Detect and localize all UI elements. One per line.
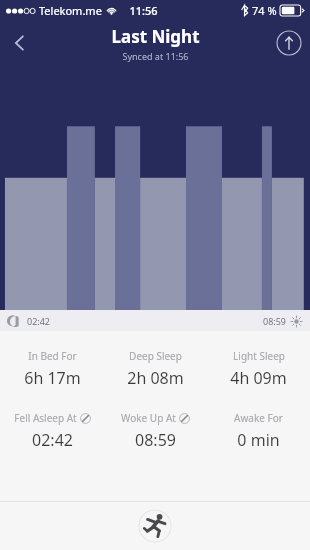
staticText: Telekom.me — [39, 3, 102, 18]
button[interactable]: Back — [0, 23, 40, 63]
staticText: 0 min — [237, 429, 280, 451]
staticText: Light Sleep — [233, 349, 285, 363]
staticText: 2h 08m — [127, 367, 184, 389]
button[interactable]: Activity — [138, 509, 172, 543]
staticText: 08:59 — [262, 315, 286, 327]
staticText: Woke Up At — [121, 411, 176, 425]
button[interactable]: Deep Sleep — [104, 347, 207, 391]
staticText: 02:42 — [32, 429, 73, 451]
staticText: Last Night — [111, 25, 200, 48]
staticText: 08:59 — [135, 429, 176, 451]
staticText: 11:56 — [129, 3, 158, 18]
staticText: 4h 09m — [230, 367, 287, 389]
button[interactable]: Share — [276, 30, 302, 56]
staticText: 02:42 — [27, 315, 51, 327]
staticText: Fell Asleep At — [14, 411, 77, 425]
staticText: Synced at 11:56 — [122, 50, 189, 62]
button[interactable]: In Bed For — [0, 347, 104, 391]
staticText: Awake For — [234, 411, 283, 425]
staticText: 74 % — [252, 3, 277, 18]
staticText: In Bed For — [28, 349, 77, 363]
button[interactable]: Light Sleep — [207, 347, 310, 391]
staticText: Deep Sleep — [129, 349, 182, 363]
staticText: 6h 17m — [24, 367, 81, 389]
button[interactable]: Woke Up At — [104, 409, 207, 453]
button[interactable]: Fell Asleep At — [0, 409, 104, 453]
button[interactable]: Awake For — [207, 409, 310, 453]
